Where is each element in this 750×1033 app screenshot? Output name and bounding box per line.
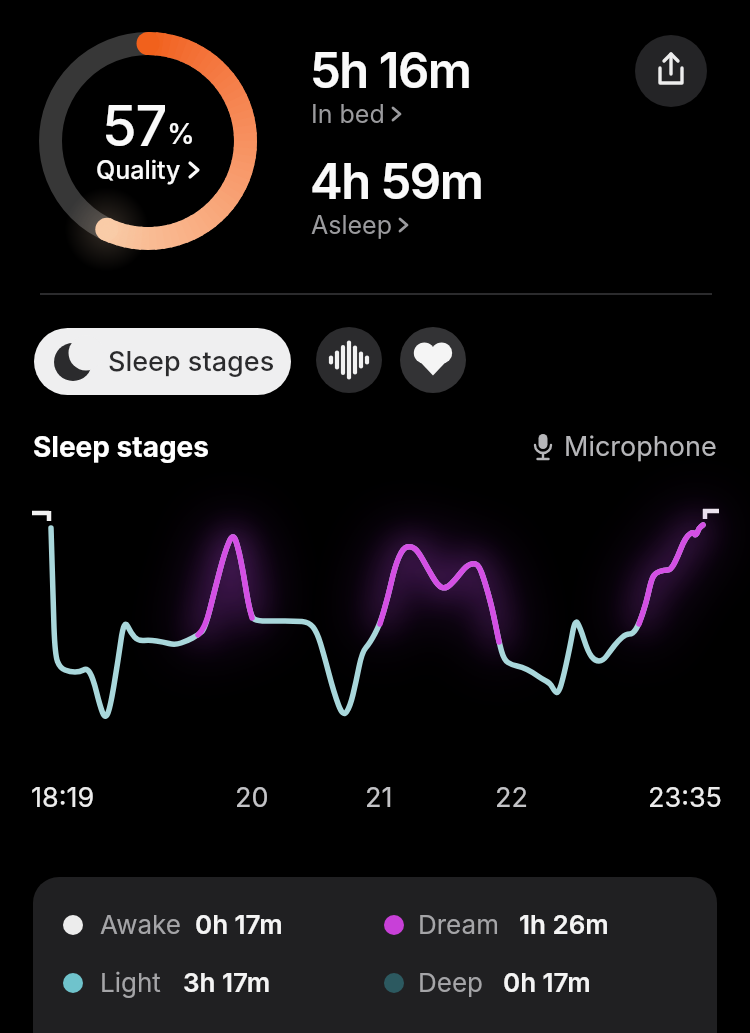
button[interactable]: 57: [39, 32, 257, 250]
staticText: Quality: [96, 155, 181, 185]
staticText: 5h 16m: [310, 41, 471, 100]
staticText: 23:35: [648, 781, 723, 814]
button[interactable]: [316, 327, 382, 393]
staticText: Light: [100, 967, 161, 998]
staticText: Deep: [418, 967, 483, 998]
staticText: 18:19: [31, 781, 95, 814]
staticText: Asleep: [311, 210, 392, 240]
staticText: 0h 17m: [195, 909, 283, 940]
staticText: 22: [495, 781, 528, 814]
staticText: Microphone: [564, 430, 717, 463]
staticText: Awake: [100, 909, 181, 940]
staticText: 0h 17m: [503, 967, 591, 998]
staticText: 57: [102, 92, 167, 160]
staticText: 20: [235, 781, 269, 814]
staticText: 3h 17m: [183, 967, 271, 998]
staticText: Sleep stages: [108, 345, 275, 378]
staticText: 1h 26m: [519, 909, 609, 940]
button[interactable]: In bed: [311, 99, 402, 129]
staticText: 21: [365, 781, 393, 814]
button[interactable]: [400, 327, 466, 393]
staticText: Sleep stages: [33, 430, 209, 464]
staticText: In bed: [311, 99, 385, 129]
button[interactable]: Microphone: [532, 430, 717, 463]
staticText: %: [167, 117, 195, 151]
button[interactable]: Asleep: [311, 210, 409, 240]
button[interactable]: Sleep stages: [34, 328, 291, 395]
staticText: Dream: [418, 909, 499, 940]
button[interactable]: [635, 35, 707, 107]
staticText: 4h 59m: [310, 152, 483, 211]
